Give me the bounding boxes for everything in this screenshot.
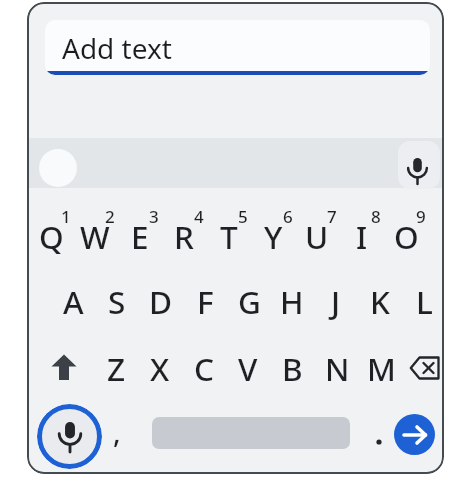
button[interactable]: W xyxy=(74,209,116,263)
staticText: A xyxy=(63,280,84,323)
staticText: Z xyxy=(107,347,126,390)
button[interactable]: A xyxy=(52,274,94,328)
staticText: J xyxy=(331,280,341,323)
button[interactable]: Q xyxy=(30,209,72,263)
button[interactable]: Y xyxy=(252,209,294,263)
button[interactable]: H xyxy=(271,274,313,328)
button[interactable] xyxy=(152,417,350,449)
staticText: F xyxy=(197,280,214,323)
button[interactable] xyxy=(42,341,86,395)
staticText: 4 xyxy=(194,205,204,228)
button[interactable]: Add text xyxy=(45,20,430,75)
button[interactable]: S xyxy=(96,274,138,328)
staticText: 8 xyxy=(371,205,381,228)
staticText: O xyxy=(394,215,419,258)
button[interactable]: B xyxy=(271,341,313,395)
button[interactable]: K xyxy=(359,274,401,328)
staticText: E xyxy=(131,215,149,258)
button[interactable]: , xyxy=(104,412,130,452)
staticText: W xyxy=(80,215,110,258)
button[interactable] xyxy=(369,432,389,452)
button[interactable] xyxy=(39,149,77,187)
button[interactable]: O xyxy=(385,209,427,263)
staticText: 3 xyxy=(149,205,159,228)
button[interactable]: V xyxy=(227,341,269,395)
staticText: 2 xyxy=(105,205,115,228)
button[interactable] xyxy=(37,404,102,469)
button[interactable]: J xyxy=(315,274,357,328)
staticText: D xyxy=(149,280,173,323)
button[interactable]: X xyxy=(139,341,181,395)
staticText: N xyxy=(325,347,350,390)
staticText: V xyxy=(238,347,258,390)
button[interactable]: Z xyxy=(95,341,137,395)
staticText: 6 xyxy=(283,205,293,228)
staticText: Add text xyxy=(62,29,172,67)
button[interactable]: F xyxy=(184,274,226,328)
staticText: I xyxy=(356,215,368,258)
button[interactable] xyxy=(394,414,435,455)
staticText: , xyxy=(113,413,121,451)
staticText: B xyxy=(282,347,303,390)
button[interactable]: R xyxy=(163,209,205,263)
staticText: U xyxy=(305,215,329,258)
button[interactable]: M xyxy=(360,341,402,395)
staticText: H xyxy=(280,280,304,323)
button[interactable]: I xyxy=(341,209,383,263)
button[interactable]: G xyxy=(228,274,270,328)
staticText: S xyxy=(108,280,126,323)
staticText: R xyxy=(174,215,194,258)
button[interactable]: N xyxy=(316,341,358,395)
staticText: T xyxy=(220,215,238,258)
button[interactable]: D xyxy=(140,274,182,328)
staticText: X xyxy=(150,347,170,390)
staticText: 9 xyxy=(416,205,426,228)
button[interactable]: E xyxy=(119,209,161,263)
staticText: K xyxy=(370,280,390,323)
staticText: C xyxy=(194,347,215,390)
button[interactable]: C xyxy=(183,341,225,395)
button[interactable] xyxy=(405,341,445,395)
staticText: 7 xyxy=(327,205,337,228)
staticText: 5 xyxy=(238,205,248,228)
staticText: Y xyxy=(264,215,283,258)
button[interactable]: U xyxy=(296,209,338,263)
button[interactable] xyxy=(398,141,440,189)
staticText: M xyxy=(367,347,396,390)
button[interactable]: L xyxy=(403,274,445,328)
staticText: G xyxy=(238,280,261,323)
button[interactable]: T xyxy=(208,209,250,263)
staticText: L xyxy=(416,280,433,323)
staticText: 1 xyxy=(61,205,71,228)
staticText: Q xyxy=(39,215,64,258)
